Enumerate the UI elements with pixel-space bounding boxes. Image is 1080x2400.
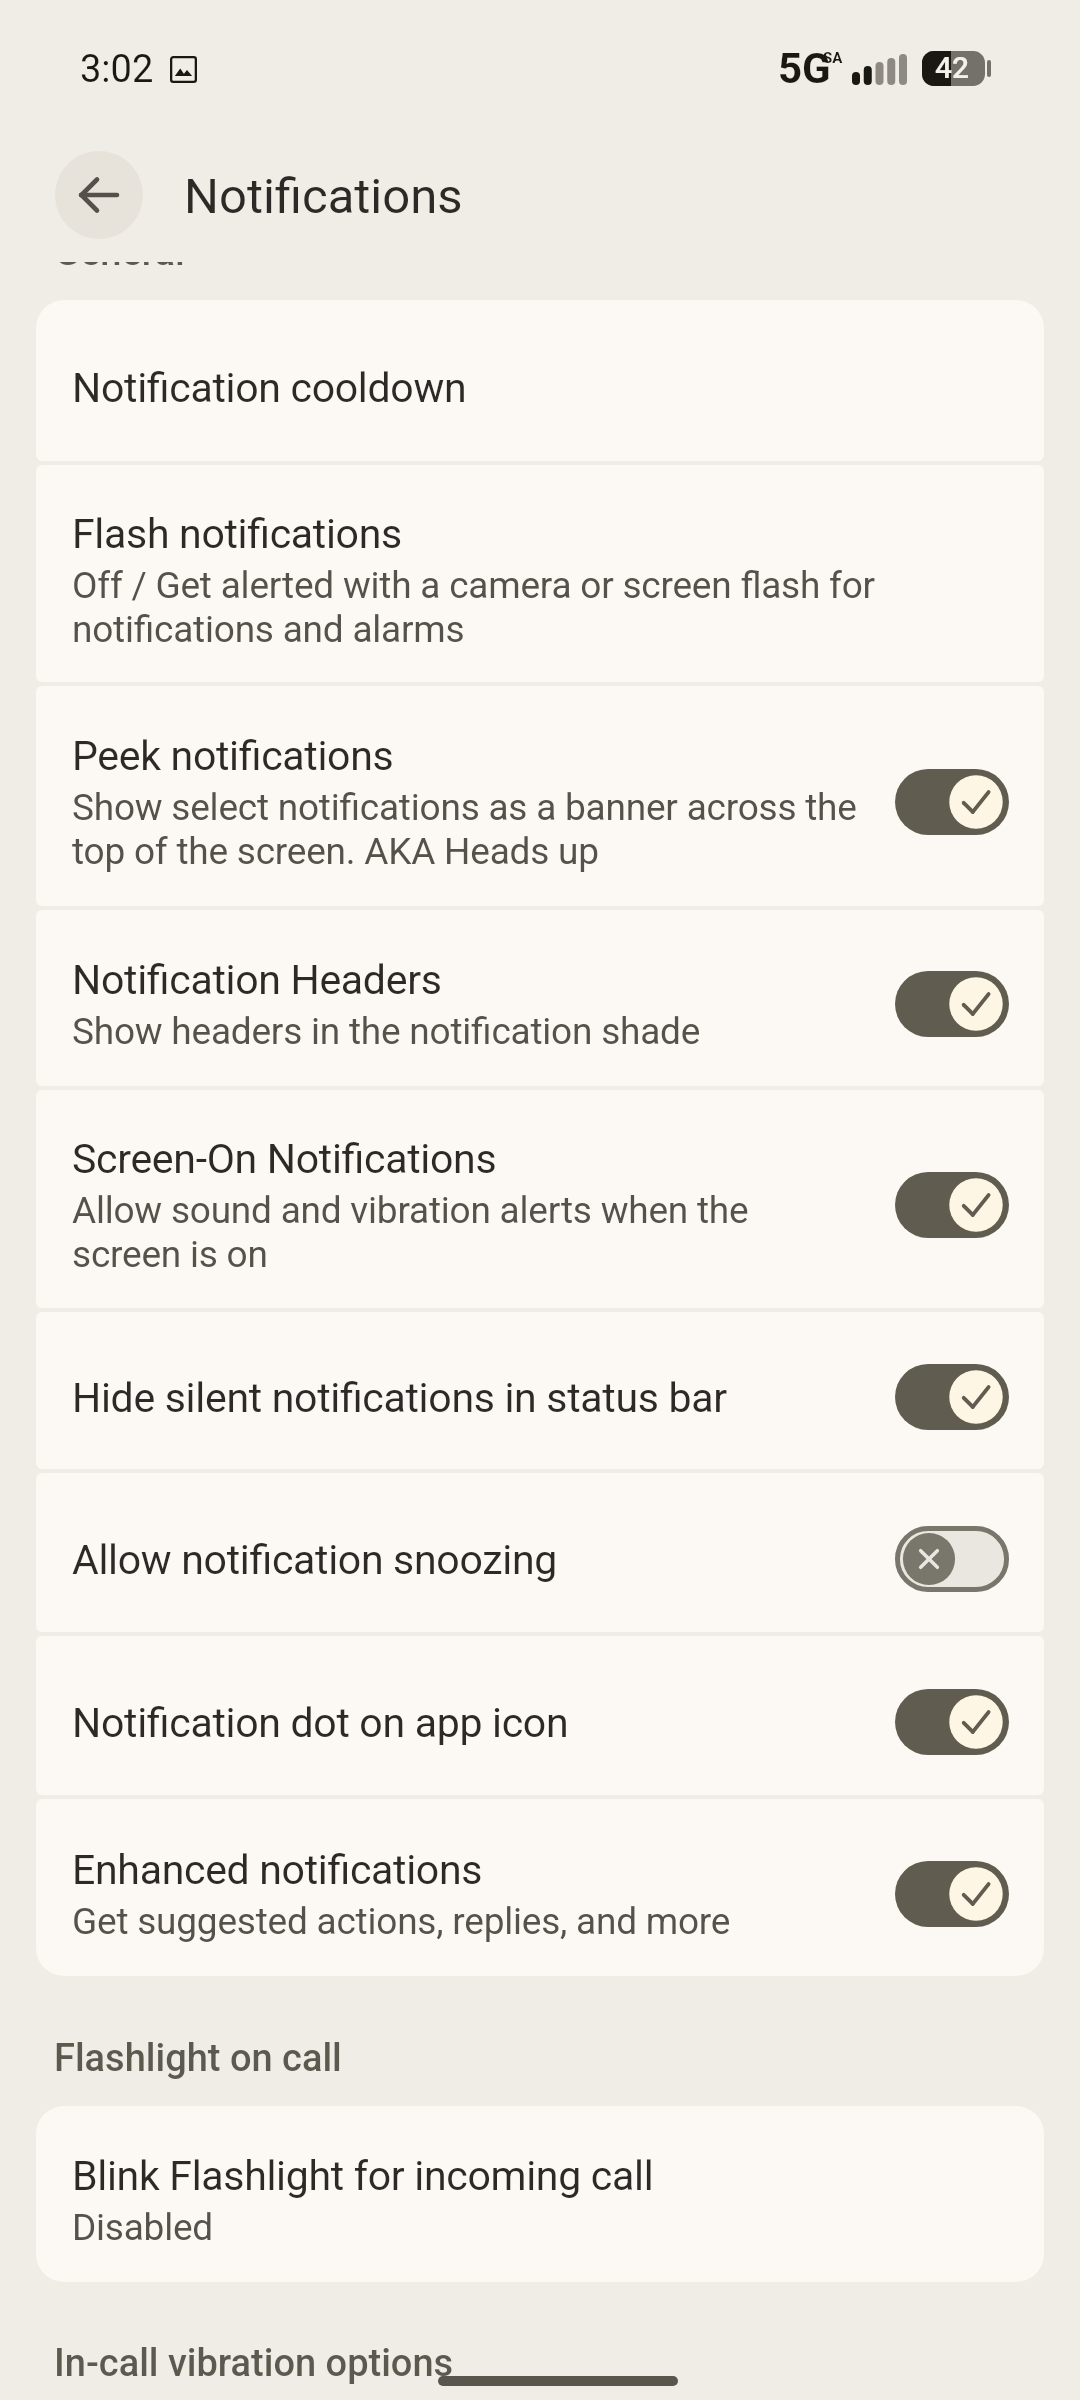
button[interactable]: Switch on	[895, 1689, 1009, 1755]
staticText: General	[54, 262, 185, 275]
staticText: Notification Headers	[72, 958, 442, 1004]
staticText: Off / Get alerted with a camera or scree…	[72, 564, 1009, 652]
button[interactable]: Notification Headers	[36, 910, 1044, 1086]
staticText: SA	[823, 49, 843, 67]
staticText: Notifications	[184, 168, 463, 225]
staticText: Disabled	[72, 2206, 214, 2250]
button[interactable]: Notification cooldown	[36, 300, 1044, 461]
button[interactable]: Notification dot on app icon	[36, 1636, 1044, 1795]
staticText: 3:02	[80, 47, 154, 92]
staticText: Flashlight on call	[54, 2036, 342, 2081]
button[interactable]: Enhanced notifications	[36, 1799, 1044, 1976]
staticText: Peek notifications	[72, 734, 394, 780]
staticText: Notification dot on app icon	[72, 1701, 569, 1747]
staticText: Allow notification snoozing	[72, 1538, 557, 1584]
staticText: Show select notifications as a banner ac…	[72, 786, 859, 874]
button[interactable]: Screen-On Notifications	[36, 1090, 1044, 1308]
staticText: Allow sound and vibration alerts when th…	[72, 1189, 859, 1277]
button[interactable]: Peek notifications	[36, 686, 1044, 906]
staticText: Notification cooldown	[72, 366, 467, 412]
staticText: Blink Flashlight for incoming call	[72, 2154, 654, 2200]
staticText: 42	[935, 50, 970, 85]
button[interactable]: Switch on	[895, 769, 1009, 835]
button[interactable]: Switch on	[895, 1172, 1009, 1238]
button[interactable]: Switch on	[895, 1364, 1009, 1430]
staticText: In-call vibration options	[54, 2341, 454, 2386]
button[interactable]: Back	[55, 151, 143, 239]
button[interactable]: Flash notifications	[36, 465, 1044, 682]
staticText: Show headers in the notification shade	[72, 1010, 701, 1054]
button[interactable]: Allow notification snoozing	[36, 1473, 1044, 1632]
staticText: 5G	[778, 44, 831, 93]
button[interactable]: Hide silent notifications in status bar	[36, 1312, 1044, 1469]
button[interactable]: Switch off	[895, 1526, 1009, 1592]
button[interactable]: Blink Flashlight for incoming call	[36, 2106, 1044, 2282]
staticText: Hide silent notifications in status bar	[72, 1376, 727, 1422]
button[interactable]: Switch on	[895, 1861, 1009, 1927]
staticText: Screen-On Notifications	[72, 1137, 497, 1183]
staticText: Enhanced notifications	[72, 1848, 483, 1894]
button[interactable]: Switch on	[895, 971, 1009, 1037]
staticText: Flash notifications	[72, 512, 402, 558]
staticText: Get suggested actions, replies, and more	[72, 1900, 731, 1944]
